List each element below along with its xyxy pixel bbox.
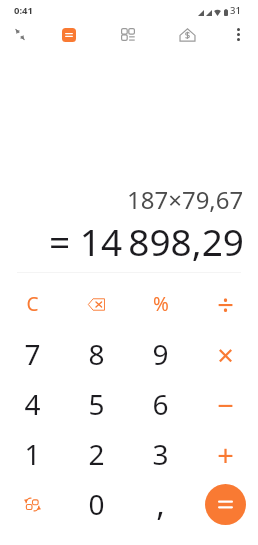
button[interactable]: Mortgage calculator: [169, 22, 205, 47]
button[interactable]: %: [128, 279, 193, 329]
staticText: 0:41: [14, 4, 33, 17]
staticText: 2: [88, 435, 105, 473]
button[interactable]: ÷: [193, 279, 258, 329]
staticText: ÷: [217, 285, 234, 324]
staticText: 9: [152, 335, 169, 373]
staticText: 1: [24, 435, 41, 473]
button[interactable]: 3: [128, 429, 193, 479]
button[interactable]: 2: [64, 429, 128, 479]
staticText: 31: [230, 4, 241, 17]
staticText: ×: [217, 335, 234, 374]
button[interactable]: 0: [64, 479, 128, 529]
button[interactable]: Unit converter: [110, 22, 146, 47]
button[interactable]: C: [0, 279, 64, 329]
button[interactable]: Equals: [205, 484, 246, 525]
button[interactable]: Calculator: [51, 22, 87, 47]
button[interactable]: 9: [128, 329, 193, 379]
button[interactable]: −: [193, 379, 258, 429]
staticText: 187×79,67: [127, 183, 244, 216]
button[interactable]: 4: [0, 379, 64, 429]
staticText: 4: [24, 385, 41, 423]
staticText: = 14 898,29: [49, 216, 244, 266]
staticText: 8: [88, 335, 105, 373]
button[interactable]: 8: [64, 329, 128, 379]
button[interactable]: 5: [64, 379, 128, 429]
button[interactable]: Collapse: [2, 22, 38, 47]
button[interactable]: 1: [0, 429, 64, 479]
staticText: %: [153, 291, 169, 317]
button[interactable]: Convert: [0, 479, 64, 529]
staticText: 0: [88, 485, 105, 523]
staticText: −: [217, 385, 234, 424]
staticText: +: [217, 435, 234, 474]
button[interactable]: ,: [128, 479, 193, 529]
button[interactable]: 6: [128, 379, 193, 429]
staticText: 6: [152, 385, 169, 423]
staticText: 7: [24, 335, 41, 373]
button[interactable]: Backspace: [64, 279, 128, 329]
button[interactable]: 7: [0, 329, 64, 379]
button[interactable]: ×: [193, 329, 258, 379]
staticText: 3: [152, 435, 169, 473]
button[interactable]: More options: [220, 22, 256, 47]
staticText: C: [26, 291, 39, 317]
staticText: ,: [156, 482, 165, 526]
button[interactable]: +: [193, 429, 258, 479]
staticText: 5: [88, 385, 105, 423]
